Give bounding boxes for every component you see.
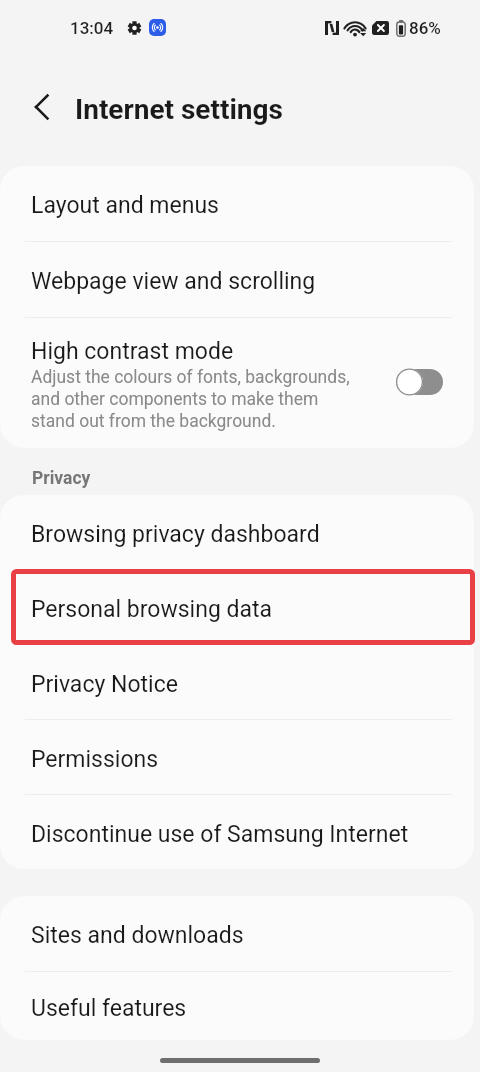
staticText: Discontinue use of Samsung Internet: [31, 821, 409, 848]
staticText: High contrast mode: [31, 338, 234, 365]
staticText: Useful features: [31, 995, 187, 1022]
staticText: 86%: [409, 18, 441, 38]
button[interactable]: Privacy Notice: [0, 645, 474, 719]
staticText: Privacy Notice: [31, 671, 178, 698]
staticText: Personal browsing data: [31, 596, 273, 623]
button[interactable]: Browsing privacy dashboard: [0, 495, 474, 569]
staticText: Webpage view and scrolling: [31, 268, 316, 295]
staticText: Permissions: [31, 746, 159, 773]
button[interactable]: Personal browsing data: [0, 570, 474, 644]
staticText: Privacy: [32, 468, 91, 489]
staticText: Adjust the colours of fonts, backgrounds…: [31, 367, 350, 431]
button[interactable]: High contrast mode: [0, 318, 474, 448]
staticText: Layout and menus: [31, 192, 219, 219]
staticText: Browsing privacy dashboard: [31, 521, 320, 548]
staticText: Sites and downloads: [31, 922, 244, 949]
staticText: 13:04: [70, 18, 114, 38]
button[interactable]: Useful features: [0, 972, 474, 1040]
button[interactable]: Layout and menus: [0, 166, 474, 241]
button[interactable]: High contrast mode off: [396, 368, 444, 396]
button[interactable]: Sites and downloads: [0, 896, 474, 971]
staticText: Internet settings: [75, 93, 283, 126]
button[interactable]: Permissions: [0, 720, 474, 794]
button[interactable]: Discontinue use of Samsung Internet: [0, 795, 474, 869]
button[interactable]: Navigate up: [20, 91, 56, 127]
button[interactable]: Webpage view and scrolling: [0, 242, 474, 317]
